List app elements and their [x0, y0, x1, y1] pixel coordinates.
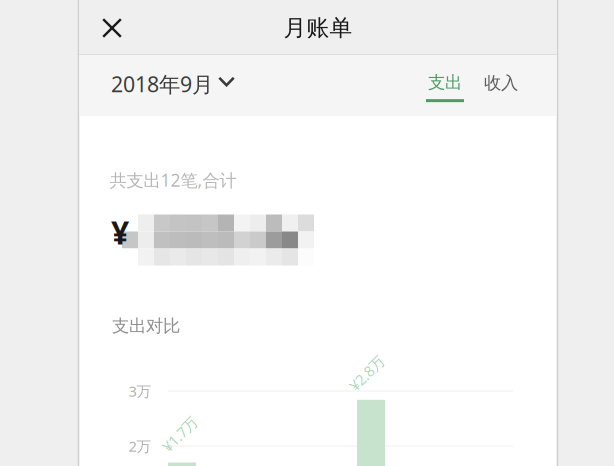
staticText: ¥: [111, 211, 129, 253]
button[interactable]: Close: [85, 0, 139, 55]
staticText: 共支出12笔,合计: [109, 168, 236, 191]
button[interactable]: 支出: [420, 64, 470, 110]
button[interactable]: 收入: [476, 61, 526, 105]
staticText: 支出对比: [112, 315, 180, 337]
staticText: 月账单: [283, 14, 352, 42]
staticText: 2万: [128, 436, 151, 456]
button[interactable]: 2018年9月: [99, 56, 247, 112]
staticText: 支出: [428, 72, 462, 93]
staticText: 3万: [128, 381, 151, 401]
staticText: 2018年9月: [111, 70, 213, 98]
staticText: 收入: [484, 72, 518, 94]
staticText: ¥1.7万: [158, 424, 201, 444]
staticText: ¥2.8万: [345, 363, 388, 383]
